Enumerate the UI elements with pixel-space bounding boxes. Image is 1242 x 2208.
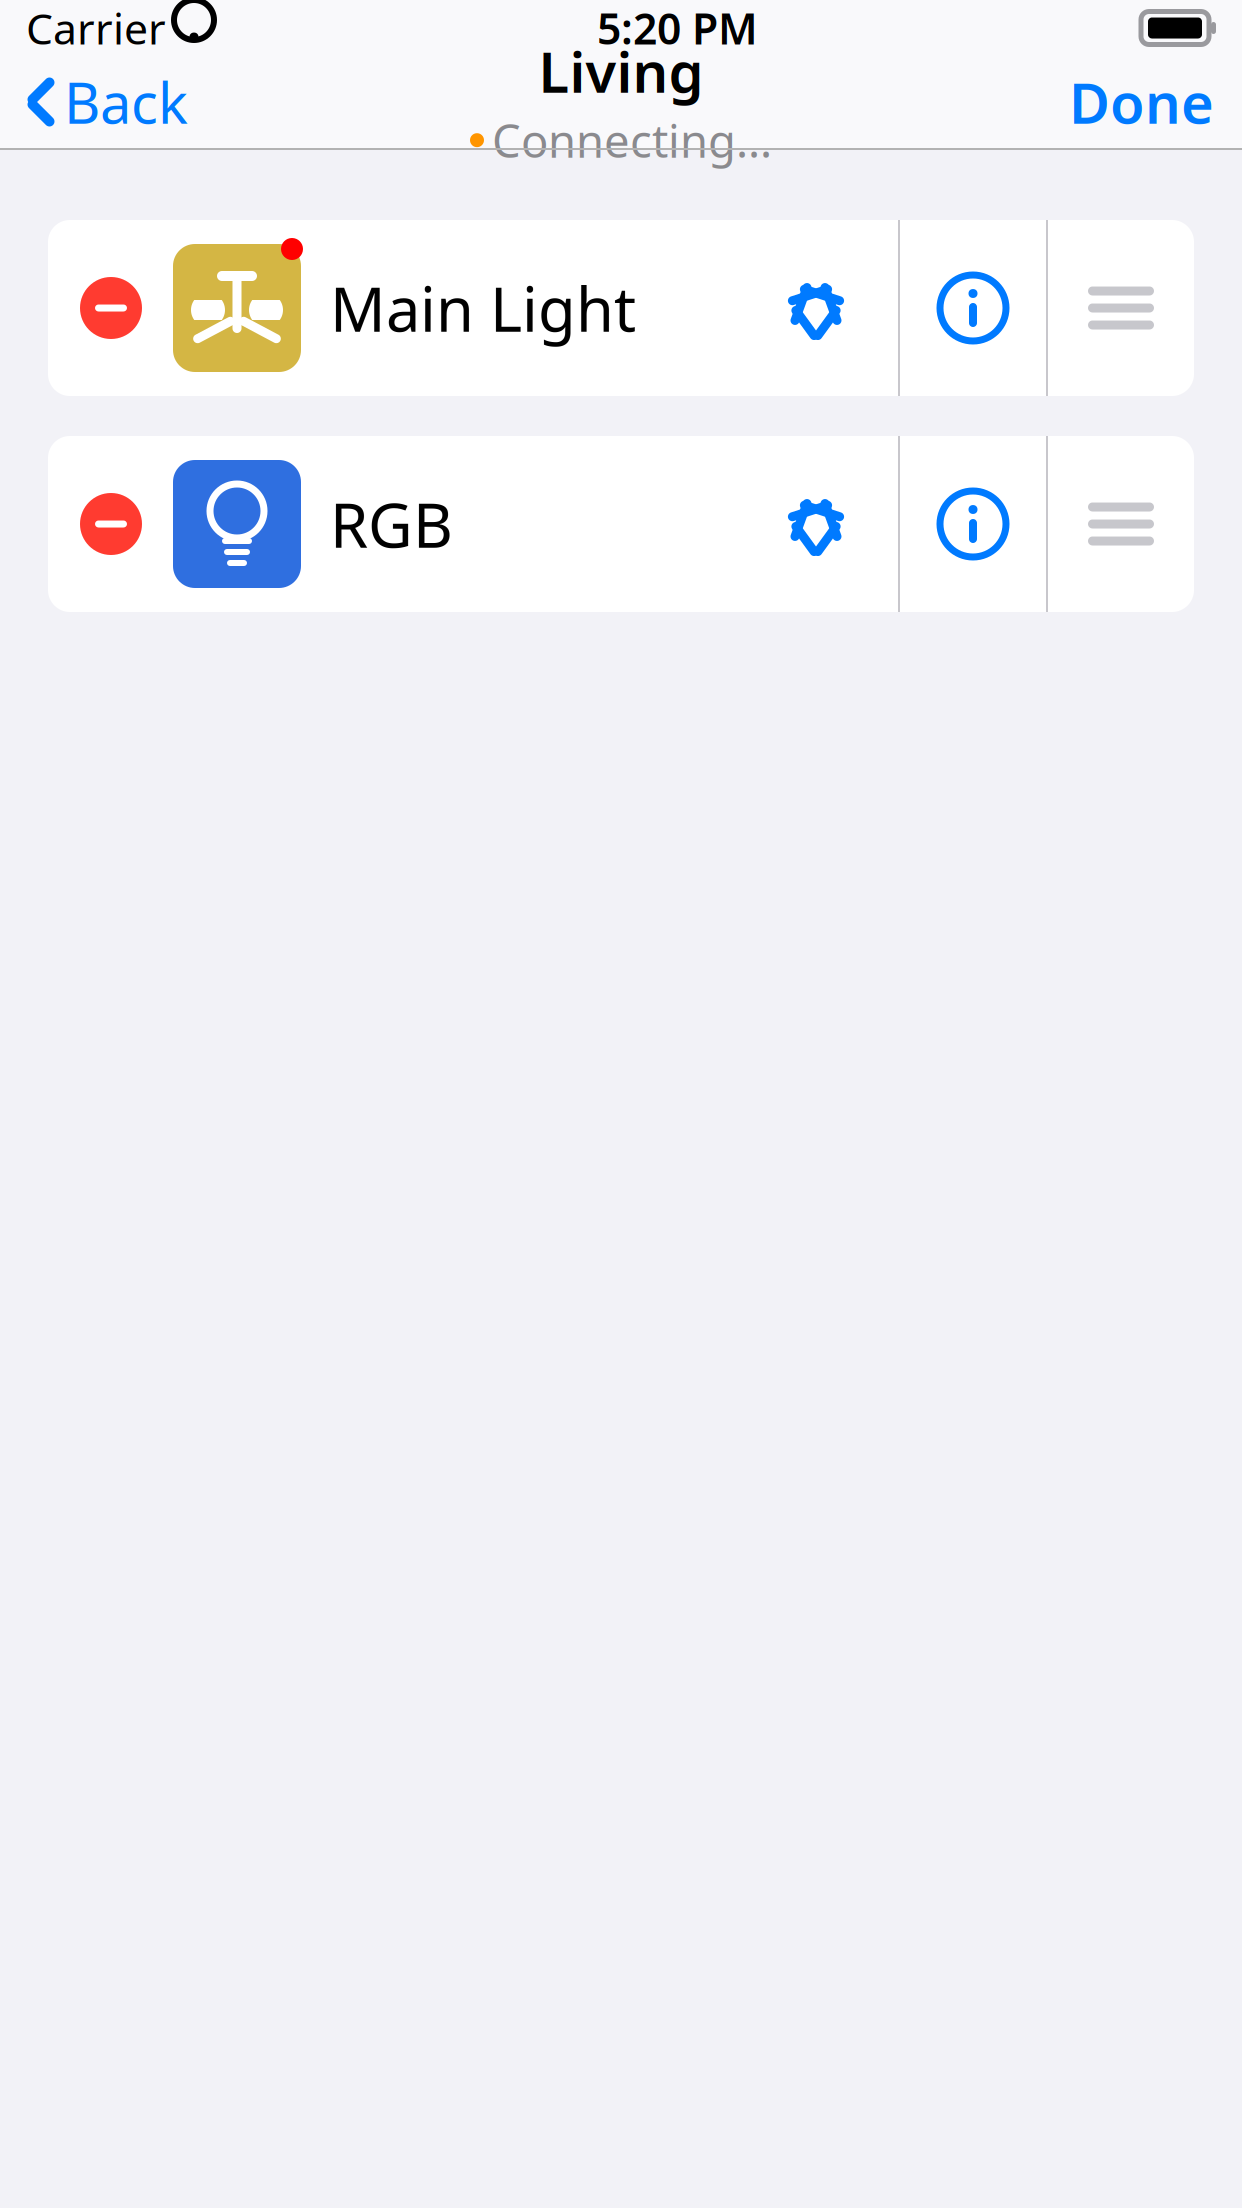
button[interactable]: Reorder Main Light [1048,220,1194,396]
staticText: Living [538,34,703,108]
staticText: RGB [330,483,453,565]
staticText: Back [64,65,188,139]
staticText: Done [1069,65,1214,139]
staticText: Main Light [330,267,636,349]
button[interactable]: Done [1069,51,1242,153]
button[interactable]: RGB [48,436,898,612]
button[interactable]: Back [0,51,188,153]
staticText: Connecting... [492,110,772,170]
staticText: Carrier [26,0,166,56]
button[interactable]: Main Light [48,220,898,396]
button[interactable]: Details for RGB [900,436,1046,612]
staticText: 5:20 PM [597,0,758,56]
button[interactable]: Details for Main Light [900,220,1046,396]
button[interactable]: Reorder RGB [1048,436,1194,612]
